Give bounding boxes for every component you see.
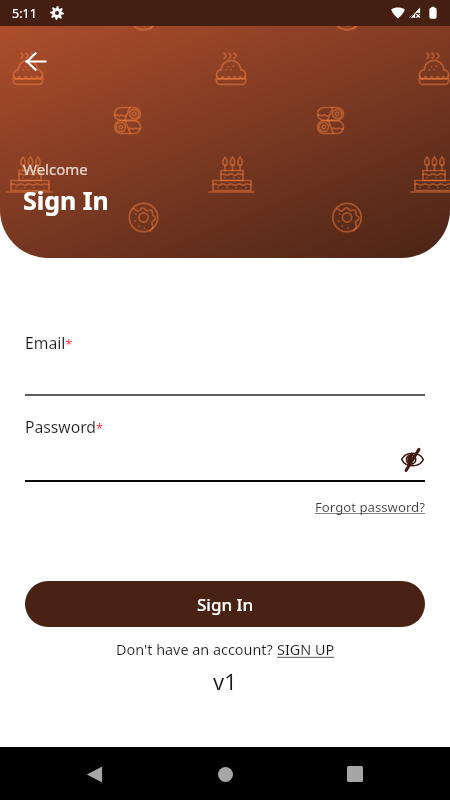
button[interactable]: Recent apps <box>335 754 375 794</box>
staticText: Welcome <box>23 159 88 179</box>
button[interactable]: SIGN UP <box>277 640 335 660</box>
button[interactable]: Back <box>18 44 52 78</box>
staticText: 5:11 <box>12 5 37 22</box>
staticText: Sign In <box>23 183 109 217</box>
button[interactable]: Sign In <box>25 581 425 627</box>
staticText: Password* <box>25 416 104 437</box>
button[interactable]: Show password <box>399 446 425 472</box>
button[interactable]: Forgot password? <box>315 498 425 516</box>
staticText: SIGN UP <box>277 640 335 660</box>
staticText: Sign In <box>197 593 254 616</box>
staticText: Don't have an account? <box>116 640 277 660</box>
staticText: v1 <box>213 666 237 696</box>
staticText: Forgot password? <box>315 498 425 516</box>
staticText: Email* <box>25 332 73 353</box>
button[interactable]: Back <box>74 754 114 794</box>
button[interactable]: Home <box>205 754 245 794</box>
